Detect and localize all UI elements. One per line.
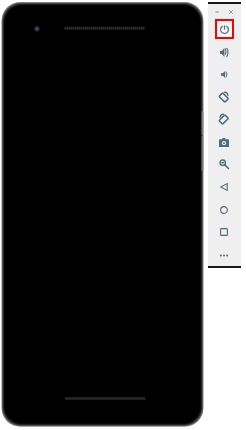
button[interactable]: Overview (216, 224, 232, 240)
button[interactable]: Minimize (213, 7, 221, 17)
button[interactable]: Take screenshot (216, 134, 232, 150)
button[interactable]: Home (216, 202, 232, 218)
button[interactable]: Zoom out (216, 156, 232, 172)
button[interactable]: Volume down (216, 66, 232, 82)
button[interactable]: Power (217, 21, 232, 37)
button[interactable]: Back (216, 179, 232, 195)
button[interactable]: Rotate left (216, 89, 232, 105)
button[interactable]: Rotate right (216, 111, 232, 127)
button[interactable]: More options (216, 247, 232, 263)
button[interactable]: Volume up (216, 44, 232, 60)
button[interactable]: Close (227, 7, 235, 17)
